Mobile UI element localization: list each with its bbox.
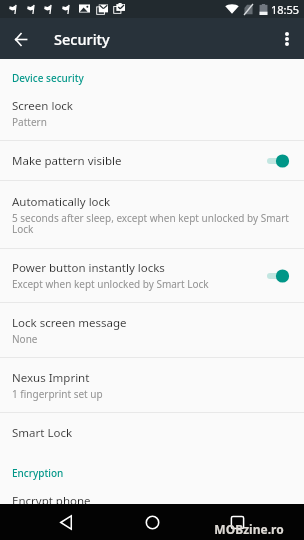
button[interactable]: Lock screen message	[0, 303, 304, 357]
button[interactable]: Automatically lock	[0, 181, 304, 248]
button[interactable]: Nexus Imprint	[0, 358, 304, 412]
staticText: Security	[54, 29, 110, 49]
button[interactable]: Home	[138, 507, 166, 537]
staticText: 18:55	[271, 2, 300, 17]
staticText: Device security	[12, 71, 84, 85]
staticText: Automatically lock	[12, 194, 111, 210]
staticText: Pattern	[12, 115, 47, 129]
button[interactable]: Screen lock	[0, 96, 304, 140]
staticText: Screen lock	[12, 98, 74, 114]
staticText: Lock screen message	[12, 315, 127, 331]
button[interactable]: Navigate up	[6, 24, 36, 54]
button[interactable]: Make pattern visible	[0, 141, 304, 180]
button[interactable]: Recent apps	[223, 507, 251, 537]
staticText: 5 seconds after sleep, except when kept …	[12, 211, 292, 236]
button[interactable]: More options	[272, 24, 302, 54]
staticText: 1 fingerprint set up	[12, 387, 103, 401]
button[interactable]: Toggle	[262, 264, 294, 288]
staticText: Nexus Imprint	[12, 370, 90, 386]
staticText: Encryption	[12, 466, 64, 480]
button[interactable]: Smart Lock	[0, 413, 304, 453]
button[interactable]: Toggle	[262, 149, 294, 173]
button[interactable]: Back	[52, 507, 80, 537]
staticText: None	[12, 332, 38, 346]
staticText: Encrypt phone	[12, 493, 91, 504]
staticText: Smart Lock	[12, 425, 73, 441]
button[interactable]: Encrypt phone	[0, 493, 304, 504]
staticText: Power button instantly locks	[12, 260, 165, 276]
button[interactable]: Power button instantly locks	[0, 249, 304, 302]
staticText: Except when kept unlocked by Smart Lock	[12, 277, 209, 291]
staticText: MOBzine.ro	[214, 521, 284, 537]
staticText: Make pattern visible	[12, 153, 122, 169]
